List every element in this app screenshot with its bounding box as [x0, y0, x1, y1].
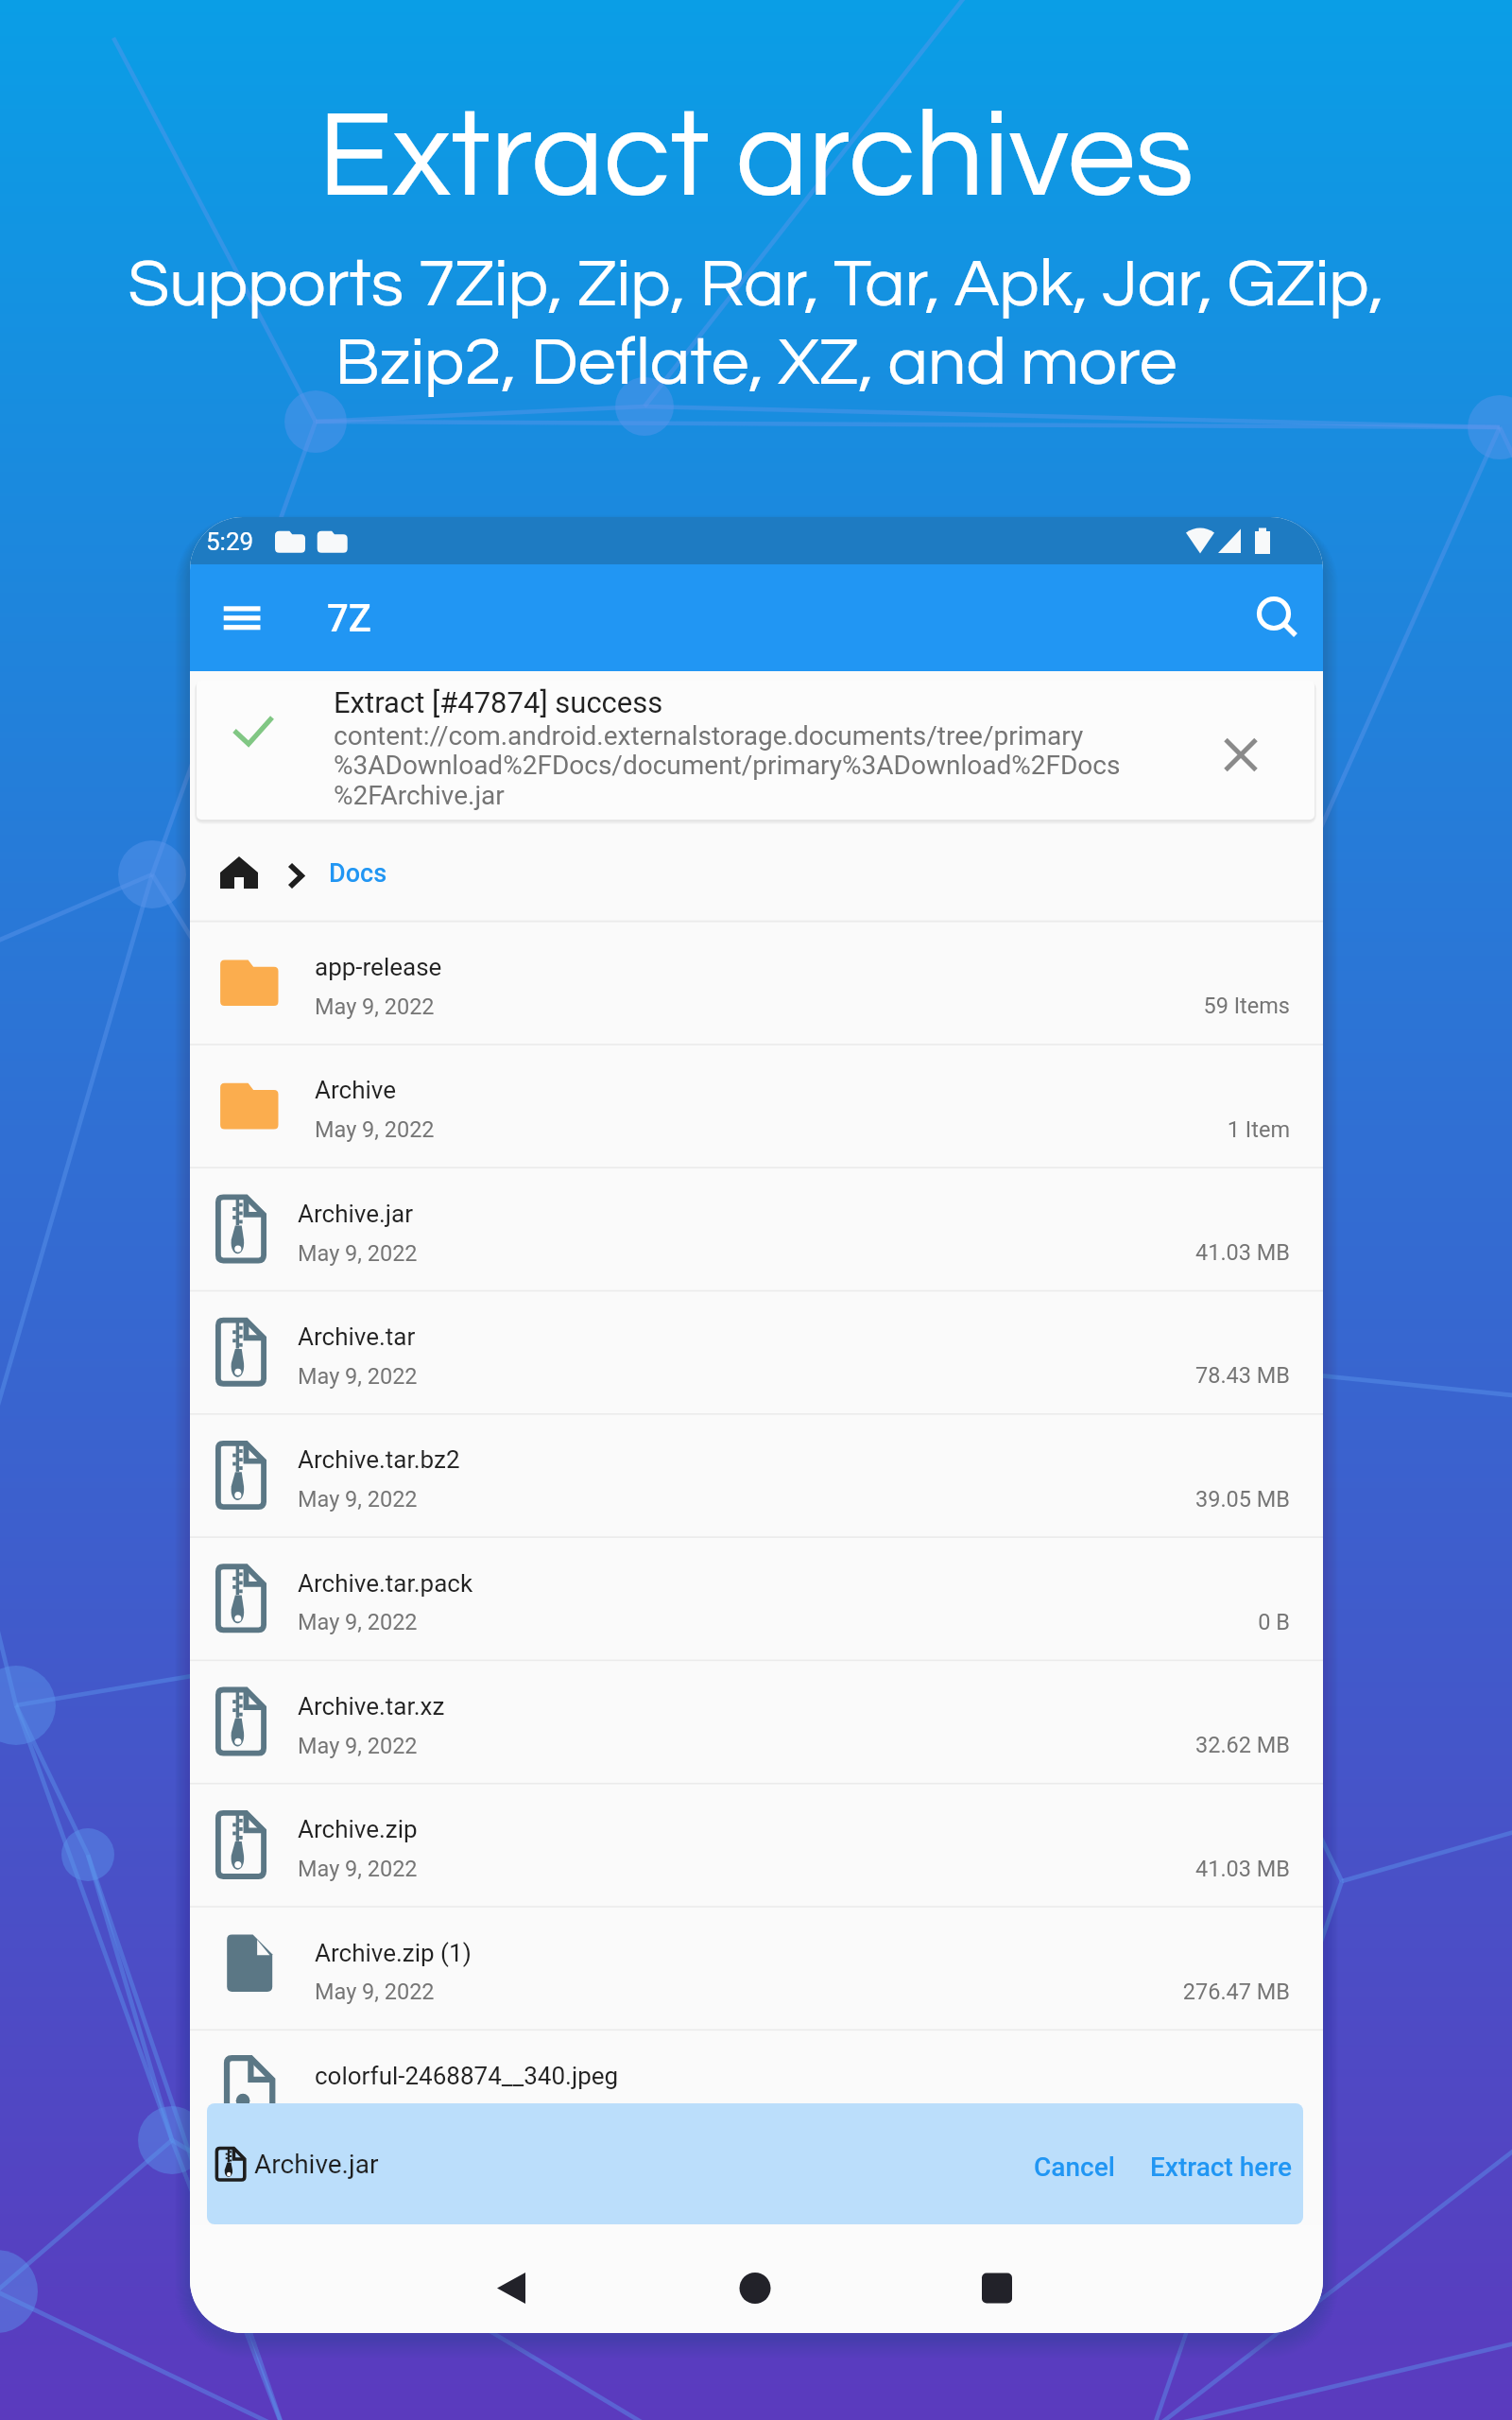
- button[interactable]: Back: [473, 2254, 549, 2324]
- button[interactable]: Docs breadcrumb: [190, 820, 1323, 921]
- staticText: colorful-2468874__340.jpeg: [315, 2062, 619, 2090]
- staticText: %3ADownload%2FDocs/document/primary%3ADo…: [334, 750, 1121, 781]
- staticText: 78.43 MB: [190, 1362, 1290, 1389]
- staticText: Archive.tar.bz2: [298, 1445, 460, 1474]
- staticText: %2FArchive.jar: [334, 780, 505, 811]
- button[interactable]: colorful-2468874__340.jpeg: [190, 2030, 1323, 2152]
- staticText: May 9, 2022: [298, 1363, 418, 1390]
- button[interactable]: Open navigation drawer: [209, 577, 275, 660]
- staticText: Archive.tar: [298, 1322, 416, 1351]
- staticText: 41.03 MB: [190, 1239, 1290, 1266]
- staticText: app-release: [315, 953, 442, 981]
- staticText: May 9, 2022: [298, 1856, 418, 1882]
- staticText: 1 Item: [190, 1116, 1290, 1143]
- staticText: Archive.zip: [298, 1815, 418, 1843]
- staticText: May 9, 2022: [298, 1486, 418, 1512]
- button[interactable]: Home: [717, 2254, 793, 2324]
- button[interactable]: Archive.zip: [190, 1783, 1323, 1906]
- staticText: 0 B: [190, 1609, 1290, 1635]
- staticText: Archive.jar: [254, 2149, 379, 2180]
- staticText: Archive.zip (1): [315, 1939, 472, 1967]
- button[interactable]: Archive: [190, 1044, 1323, 1167]
- staticText: 7Z: [327, 596, 371, 641]
- button[interactable]: Recent apps: [959, 2254, 1035, 2324]
- staticText: 39.05 MB: [190, 1486, 1290, 1512]
- button[interactable]: Archive.tar.xz: [190, 1660, 1323, 1783]
- staticText: May 9, 2022: [315, 1979, 435, 2005]
- staticText: 41.03 MB: [190, 1856, 1290, 1882]
- staticText: Archive.jar: [298, 1200, 414, 1228]
- staticText: Supports 7Zip, Zip, Rar, Tar, Apk, Jar, …: [0, 251, 1512, 398]
- staticText: Docs: [329, 858, 387, 889]
- staticText: May 9, 2022: [298, 1733, 418, 1759]
- staticText: 32.62 MB: [190, 1732, 1290, 1758]
- button[interactable]: Extract [#47874] success notification: [197, 681, 1314, 820]
- button[interactable]: Archive.tar.bz2: [190, 1413, 1323, 1536]
- staticText: May 9, 2022: [298, 1609, 418, 1635]
- button[interactable]: Cancel: [1028, 2126, 1132, 2202]
- staticText: content://com.android.externalstorage.do…: [334, 720, 1084, 752]
- staticText: 59 Items: [190, 993, 1290, 1019]
- staticText: Archive.tar.xz: [298, 1692, 445, 1720]
- staticText: May 9, 2022: [315, 994, 435, 1020]
- button[interactable]: Search: [1235, 575, 1318, 658]
- button[interactable]: Archive.tar: [190, 1290, 1323, 1413]
- staticText: May 9, 2022: [298, 1240, 418, 1267]
- staticText: 276.47 MB: [190, 1979, 1290, 2005]
- button[interactable]: Extract here: [1144, 2126, 1296, 2202]
- staticText: Archive: [315, 1076, 396, 1104]
- button[interactable]: app-release: [190, 921, 1323, 1044]
- button[interactable]: Archive.tar.pack: [190, 1536, 1323, 1659]
- button[interactable]: Archive.zip (1): [190, 1906, 1323, 2029]
- button[interactable]: Archive.jar: [190, 1167, 1323, 1289]
- staticText: May 9, 2022: [315, 2102, 435, 2129]
- staticText: Archive.tar.pack: [298, 1569, 473, 1598]
- button[interactable]: Dismiss: [1199, 713, 1282, 796]
- staticText: 5:29: [206, 527, 254, 556]
- staticText: Extract here: [1150, 2152, 1292, 2183]
- staticText: Cancel: [1034, 2152, 1115, 2183]
- staticText: Extract archives: [0, 95, 1512, 220]
- staticText: May 9, 2022: [315, 1116, 435, 1143]
- staticText: Extract [#47874] success: [334, 685, 663, 719]
